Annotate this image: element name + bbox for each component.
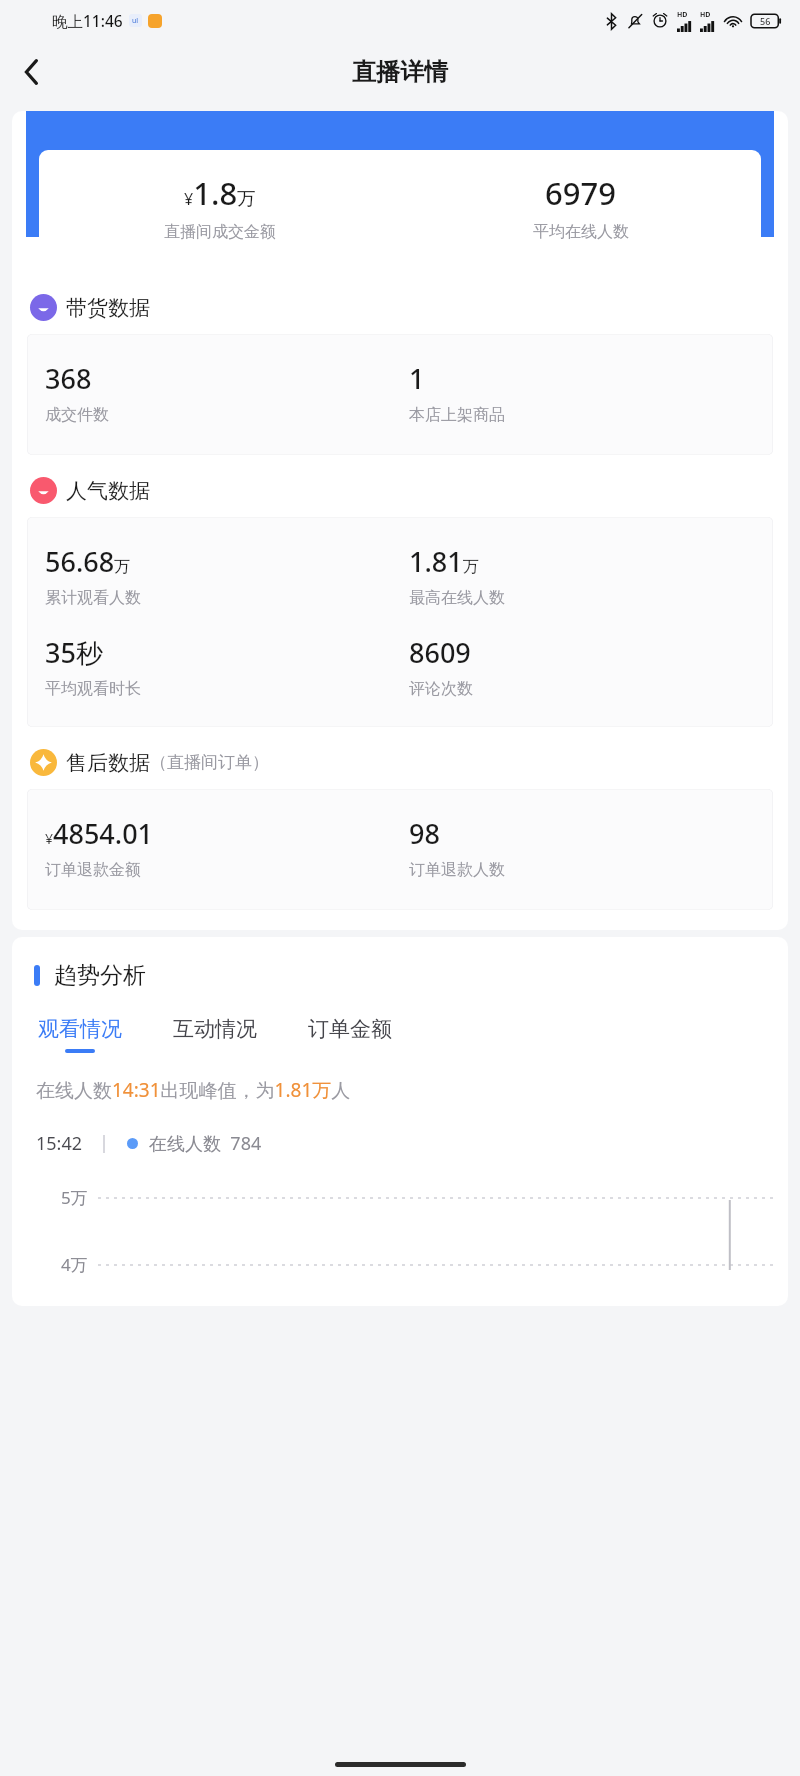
staticText: 5万	[61, 1186, 88, 1209]
staticText: 晚上11:46	[52, 10, 123, 31]
staticText: 售后数据	[66, 750, 150, 776]
button[interactable]: 观看情况	[36, 1016, 124, 1053]
staticText: （直播间订单）	[150, 752, 269, 773]
staticText: 订单退款金额	[45, 860, 141, 880]
staticText: 本店上架商品	[409, 405, 505, 425]
staticText: 最高在线人数	[409, 588, 505, 608]
staticText: 56	[760, 15, 771, 27]
staticText: ul	[132, 16, 139, 26]
staticText: 在线人数14:31出现峰值，为1.81万人	[36, 1077, 351, 1103]
staticText: 带货数据	[66, 295, 150, 321]
staticText: 8609	[409, 634, 471, 671]
staticText: 成交件数	[45, 405, 109, 425]
staticText: 趋势分析	[54, 961, 146, 990]
staticText: 6979	[545, 172, 616, 214]
staticText: HD	[677, 10, 688, 20]
staticText: ¥1.8万	[184, 172, 256, 214]
staticText: 直播间成交金额	[164, 222, 276, 242]
staticText: 15:42	[36, 1131, 83, 1156]
button[interactable]: 互动情况	[171, 1016, 259, 1053]
staticText: ¥4854.01	[45, 815, 154, 852]
staticText: 互动情况	[173, 1016, 257, 1042]
button[interactable]: 订单金额	[306, 1016, 394, 1053]
staticText: 直播详情	[352, 57, 448, 87]
staticText: 平均观看时长	[45, 679, 141, 699]
staticText: 订单金额	[308, 1016, 392, 1042]
staticText: 评论次数	[409, 679, 473, 699]
staticText: 在线人数 784	[149, 1131, 262, 1156]
staticText: 累计观看人数	[45, 588, 141, 608]
staticText: 368	[45, 360, 92, 397]
staticText: 人气数据	[66, 478, 150, 504]
staticText: 35秒	[45, 634, 103, 671]
staticText: 观看情况	[38, 1016, 122, 1042]
staticText: 订单退款人数	[409, 860, 505, 880]
staticText: HD	[700, 10, 711, 20]
staticText: 1.81万	[409, 543, 479, 580]
staticText: 1	[409, 360, 425, 397]
staticText: 4万	[61, 1253, 88, 1276]
button[interactable]: 返回	[8, 48, 56, 96]
staticText: 56.68万	[45, 543, 131, 580]
staticText: 平均在线人数	[533, 222, 629, 242]
staticText: 98	[409, 815, 440, 852]
